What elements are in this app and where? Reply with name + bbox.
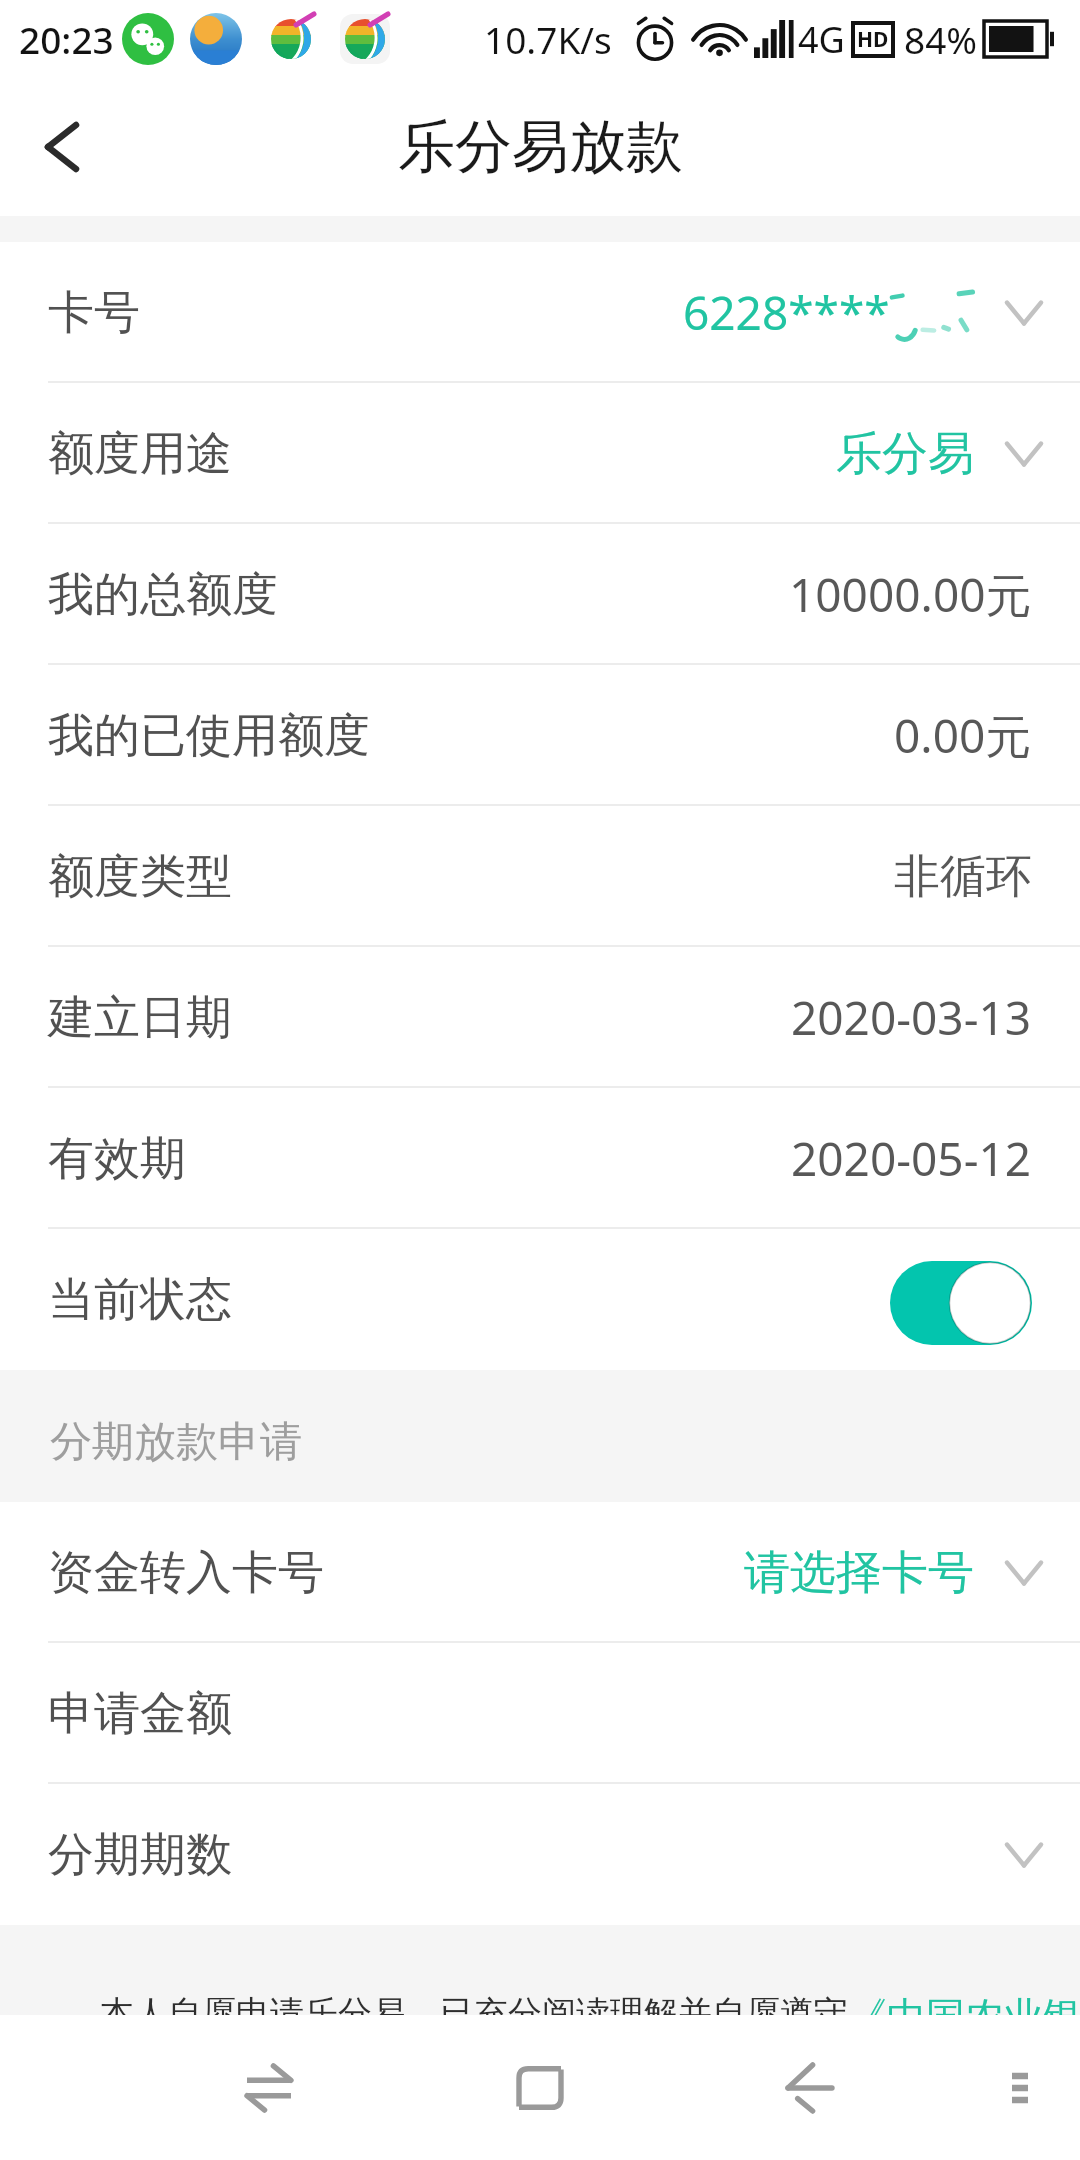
button[interactable]: Switch tasks xyxy=(179,2015,359,2160)
staticText: 额度类型 xyxy=(48,848,232,906)
button[interactable]: 额度用途 xyxy=(0,383,1080,524)
button[interactable]: Back xyxy=(720,2015,900,2160)
staticText: 额度用途 xyxy=(48,425,232,483)
button[interactable]: 分期期数 xyxy=(0,1784,1080,1925)
staticText: 4G xyxy=(798,15,845,64)
staticText: 乐分易放款 xyxy=(398,111,683,183)
staticText: 建立日期 xyxy=(48,989,232,1047)
button[interactable]: 有效期 xyxy=(0,1088,1080,1229)
staticText: 《中国农业银行 xyxy=(848,1992,1080,2015)
staticText: 2020-05-12 xyxy=(791,1127,1032,1190)
staticText: 请选择卡号 xyxy=(744,1544,974,1602)
button[interactable]: 申请金额 xyxy=(0,1643,1080,1784)
staticText: 20:23 xyxy=(19,14,114,64)
button[interactable]: 我的总额度 xyxy=(0,524,1080,665)
staticText: 2020-03-13 xyxy=(791,986,1032,1049)
staticText: 10000.00元 xyxy=(789,563,1032,626)
button[interactable]: 当前状态 xyxy=(0,1229,1080,1370)
staticText: 分期期数 xyxy=(48,1826,232,1884)
staticText: 84% xyxy=(904,14,978,64)
button[interactable]: 卡号 xyxy=(0,242,1080,383)
staticText: 10.7K/s xyxy=(484,14,612,64)
staticText: 卡号 xyxy=(48,284,140,342)
staticText: HD xyxy=(857,25,889,54)
button[interactable]: Toggle current status xyxy=(890,1261,1032,1345)
button[interactable]: 我的已使用额度 xyxy=(0,665,1080,806)
staticText: 0.00元 xyxy=(894,704,1032,767)
staticText: 分期放款申请 xyxy=(50,1416,302,1469)
staticText: 有效期 xyxy=(48,1130,186,1188)
staticText: 资金转入卡号 xyxy=(48,1544,324,1602)
staticText: 我的总额度 xyxy=(48,566,278,624)
staticText: 当前状态 xyxy=(48,1271,232,1329)
button[interactable]: 资金转入卡号 xyxy=(0,1502,1080,1643)
button[interactable]: 建立日期 xyxy=(0,947,1080,1088)
button[interactable]: Menu xyxy=(960,2015,1080,2160)
staticText: 乐分易 xyxy=(836,425,974,483)
staticText: 本人自愿申请乐分易，已充分阅读理解并自愿遵守 xyxy=(100,1992,848,2015)
staticText: 申请金额 xyxy=(48,1685,232,1743)
staticText: 我的已使用额度 xyxy=(48,707,370,765)
button[interactable]: Back xyxy=(0,78,124,216)
staticText: 6228**** xyxy=(683,281,890,344)
button[interactable]: 额度类型 xyxy=(0,806,1080,947)
button[interactable]: Home xyxy=(450,2015,630,2160)
staticText: 非循环 xyxy=(894,848,1032,906)
